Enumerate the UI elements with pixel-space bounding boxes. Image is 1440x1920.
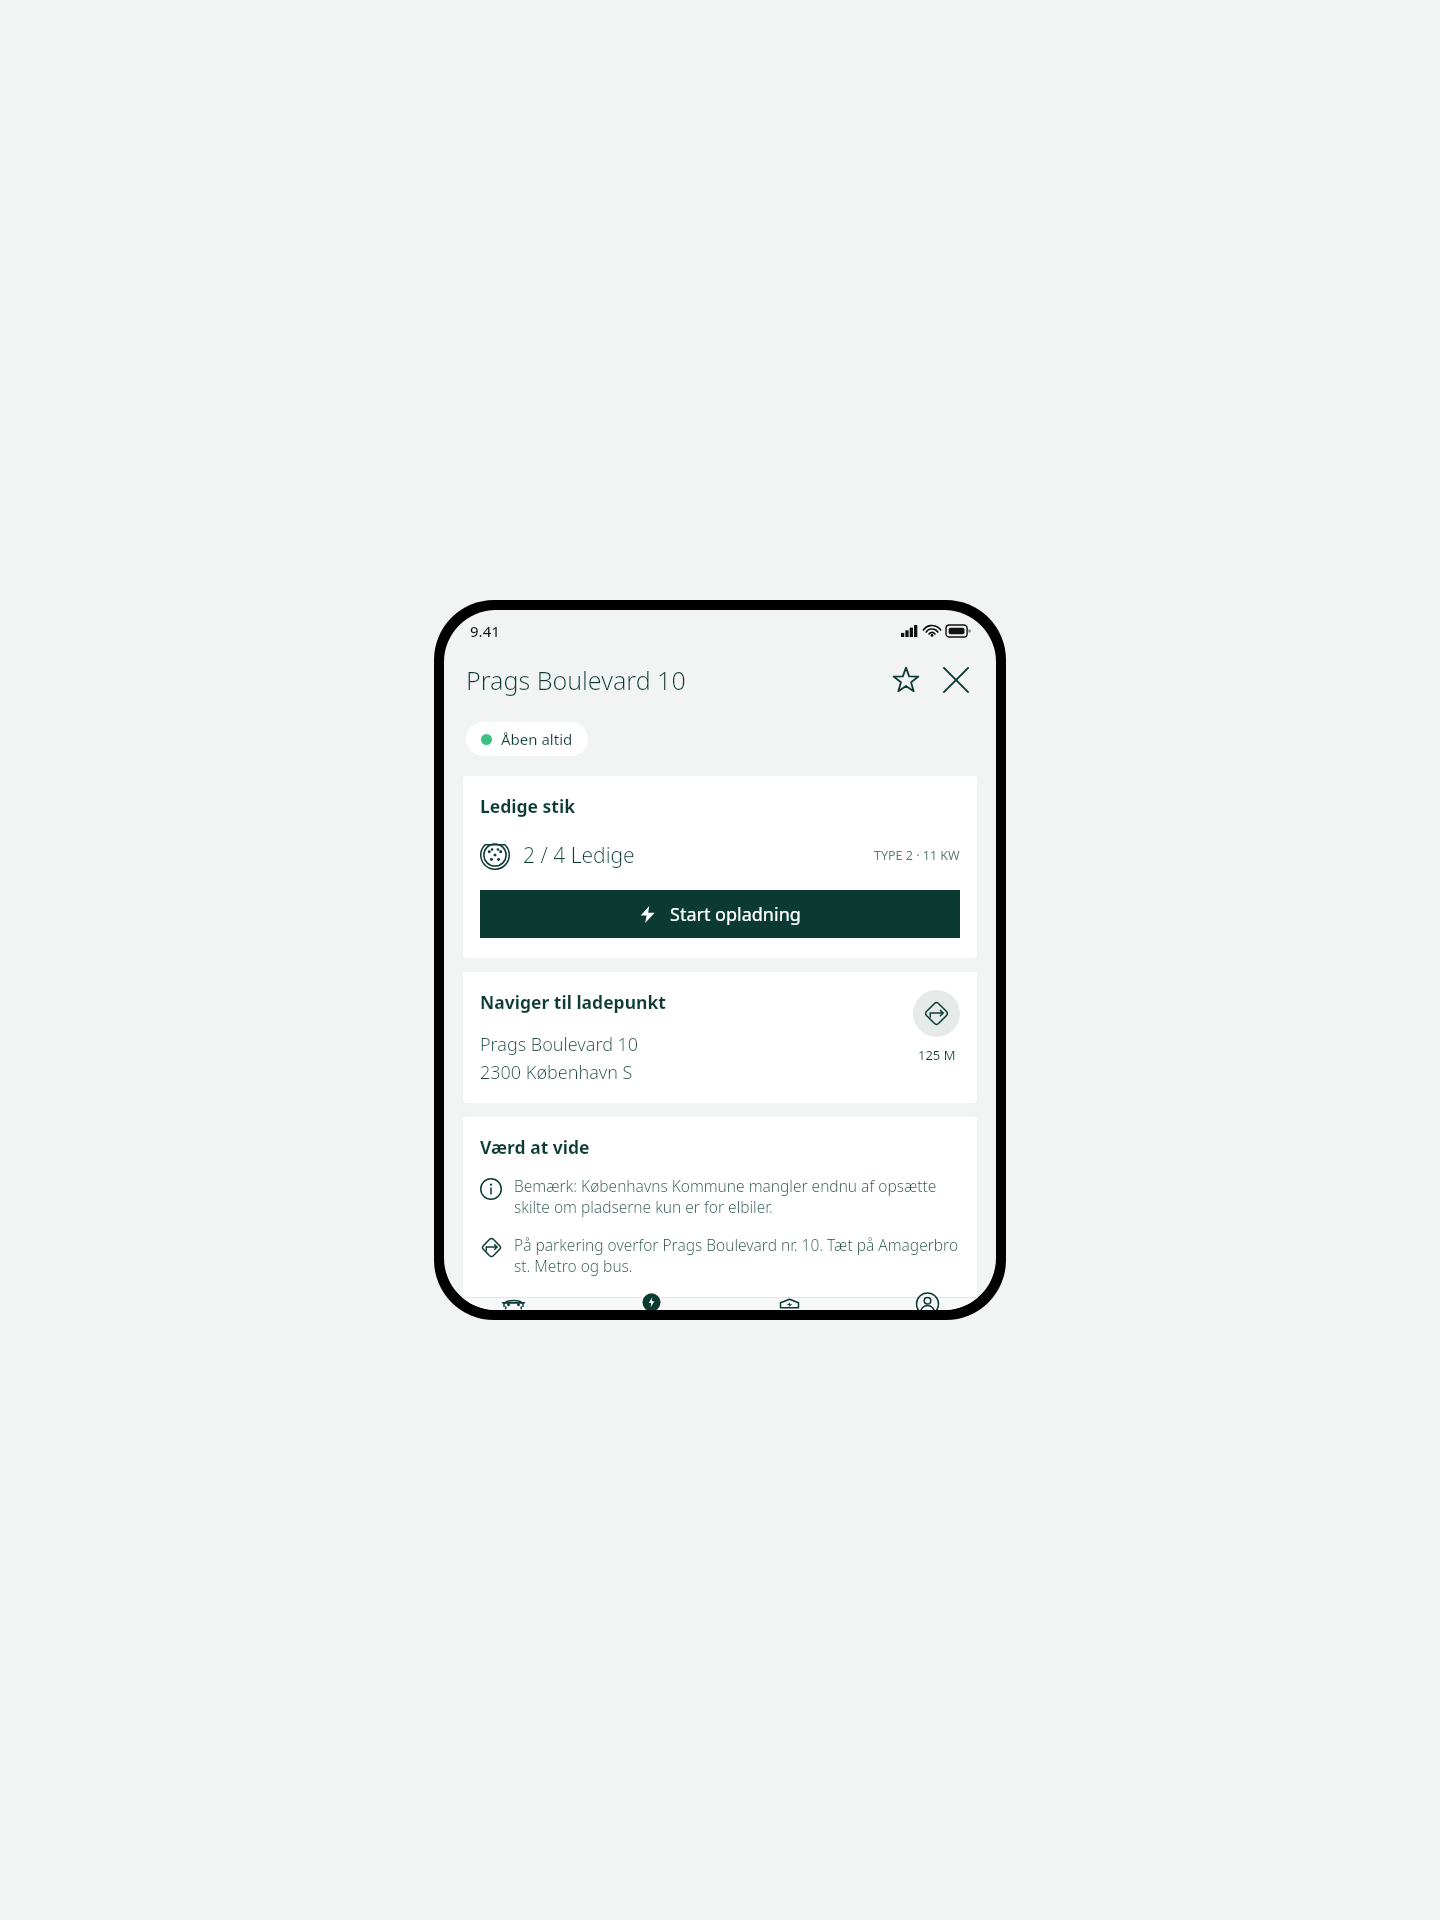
button[interactable]: Overblik xyxy=(444,1298,582,1310)
staticText: Prags Boulevard 10 xyxy=(480,1032,639,1057)
staticText: Værd at vide xyxy=(480,1135,590,1159)
staticText: 125 M xyxy=(918,1046,956,1064)
staticText: På parkering overfor Prags Boulevard nr.… xyxy=(514,1234,961,1277)
button[interactable]: Start opladning xyxy=(480,890,960,938)
staticText: Åben altid xyxy=(501,729,573,749)
staticText: Prags Boulevard 10 xyxy=(466,663,884,697)
button[interactable]: Kort xyxy=(582,1298,720,1310)
staticText: 9.41 xyxy=(470,621,500,641)
staticText: Start opladning xyxy=(670,902,801,927)
staticText: Ledige stik xyxy=(480,794,576,818)
button[interactable]: Naviger til ladepunkt xyxy=(463,972,977,1103)
button[interactable]: Close xyxy=(934,658,978,702)
staticText: 2300 København S xyxy=(480,1060,633,1085)
button[interactable]: Strøm xyxy=(720,1298,858,1310)
staticText: Bemærk: Københavns Kommune mangler endnu… xyxy=(514,1175,961,1218)
button[interactable]: Navigate xyxy=(913,990,960,1037)
button[interactable]: Favorite xyxy=(884,658,928,702)
staticText: Naviger til ladepunkt xyxy=(480,990,666,1014)
button[interactable]: Åben altid xyxy=(466,722,588,756)
button[interactable]: Profil xyxy=(858,1298,996,1310)
staticText: TYPE 2 · 11 KW xyxy=(874,847,960,864)
staticText: 2 / 4 Ledige xyxy=(523,841,635,870)
